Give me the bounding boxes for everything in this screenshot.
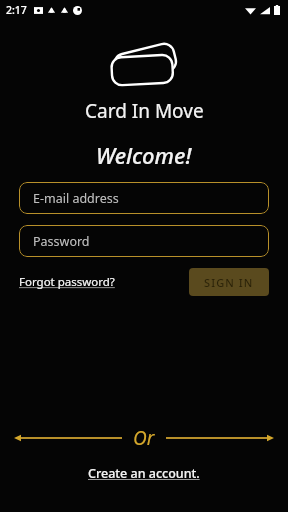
staticText: Password: [33, 233, 90, 250]
button[interactable]: Create an account.: [84, 461, 204, 486]
staticText: Card In Move: [85, 98, 204, 124]
staticText: 2:17: [6, 3, 27, 17]
staticText: E-mail address: [33, 190, 119, 207]
button[interactable]: Password: [19, 225, 269, 257]
button[interactable]: E-mail address: [19, 182, 269, 214]
staticText: Forgot password?: [19, 274, 115, 290]
staticText: SIGN IN: [204, 275, 254, 289]
staticText: Create an account.: [88, 465, 200, 482]
button[interactable]: Forgot password?: [19, 270, 115, 294]
staticText: Welcome!: [96, 140, 192, 170]
staticText: Or: [133, 425, 155, 451]
button[interactable]: SIGN IN: [189, 268, 269, 296]
